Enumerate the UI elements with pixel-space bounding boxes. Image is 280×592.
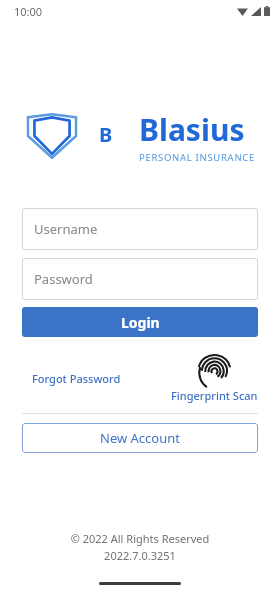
staticText: New Account	[100, 429, 180, 447]
staticText: Login	[121, 313, 160, 332]
button[interactable]: Password	[22, 258, 258, 300]
other: Fingerprint Scan	[198, 353, 231, 386]
staticText: Forgot Password	[32, 371, 121, 386]
button[interactable]: Forgot Password	[32, 371, 121, 386]
staticText: PERSONAL INSURANCE	[139, 151, 255, 164]
button[interactable]: New Account	[22, 423, 258, 453]
staticText: Username	[34, 220, 98, 238]
staticText: 10:00	[14, 4, 43, 19]
staticText: © 2022 All Rights Reserved	[0, 531, 280, 546]
button[interactable]: Fingerprint Scan	[171, 353, 258, 403]
staticText: Fingerprint Scan	[171, 388, 258, 403]
button[interactable]: Username	[22, 208, 258, 250]
staticText: B	[99, 121, 113, 148]
button[interactable]: Login	[22, 307, 258, 337]
staticText: Password	[34, 270, 93, 288]
staticText: 2022.7.0.3251	[0, 548, 280, 563]
staticText: Blasius	[139, 109, 245, 150]
